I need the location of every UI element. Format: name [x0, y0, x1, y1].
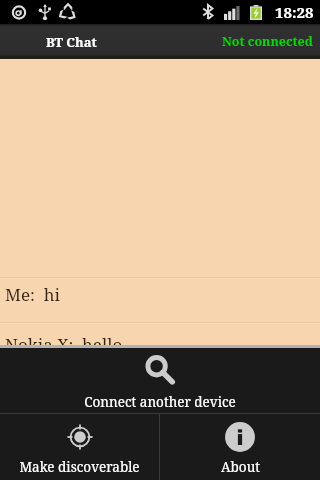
staticText: About: [221, 458, 260, 476]
button[interactable]: Make discoverable: [0, 414, 159, 480]
staticText: Connect another device: [84, 393, 236, 411]
staticText: 18:28: [275, 2, 314, 22]
button[interactable]: Connect another device: [0, 348, 320, 413]
staticText: Not connected: [222, 33, 313, 50]
staticText: Me: hi: [5, 283, 60, 306]
button[interactable]: About: [160, 414, 320, 480]
staticText: Nokia X: hello: [5, 333, 123, 345]
staticText: Make discoverable: [19, 458, 140, 476]
staticText: BT Chat: [46, 33, 97, 51]
